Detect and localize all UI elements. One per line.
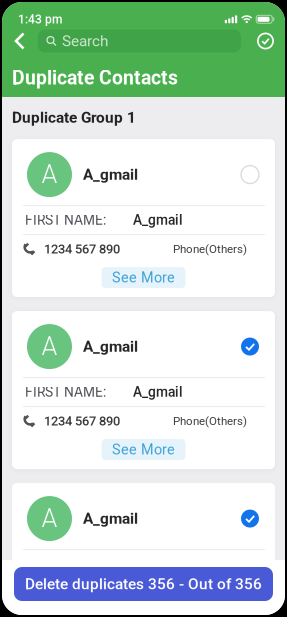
button[interactable]: Search (38, 29, 241, 52)
staticText: FIRST NAME: (25, 212, 106, 228)
staticText: A_gmail (83, 166, 138, 183)
button[interactable]: A (12, 139, 275, 197)
button[interactable]: Back (14, 32, 26, 49)
staticText: A_gmail (83, 510, 138, 527)
button[interactable]: Select all (257, 32, 274, 49)
button[interactable]: See More (101, 267, 185, 288)
staticText: Phone(Others) (173, 415, 247, 427)
button[interactable]: Delete duplicates 356 - Out of 356 (14, 567, 273, 601)
staticText: A (41, 504, 57, 533)
staticText: A_gmail (133, 384, 183, 400)
staticText: 1:43 pm (18, 13, 62, 26)
staticText: A (41, 332, 57, 361)
button[interactable]: A (12, 311, 275, 369)
staticText: A (41, 160, 57, 189)
staticText: See More (112, 270, 175, 286)
staticText: Phone(Others) (173, 243, 247, 255)
staticText: Duplicate Contacts (12, 67, 178, 89)
staticText: Delete duplicates 356 - Out of 356 (25, 575, 262, 593)
staticText: 1234 567 890 (44, 242, 120, 256)
staticText: Search (62, 32, 108, 50)
staticText: Duplicate Group 1 (12, 109, 136, 126)
button[interactable]: See More (101, 439, 185, 460)
staticText: FIRST NAME: (25, 384, 106, 400)
staticText: A_gmail (133, 212, 183, 228)
button[interactable]: A (12, 483, 275, 541)
staticText: A_gmail (83, 338, 138, 355)
staticText: See More (112, 442, 175, 458)
staticText: 1234 567 890 (44, 414, 120, 428)
